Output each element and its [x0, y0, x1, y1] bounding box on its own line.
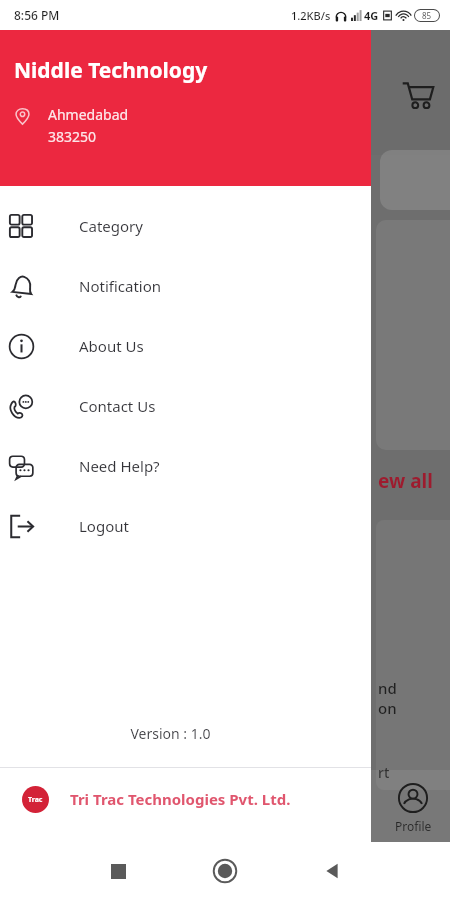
staticText: Profile [395, 818, 432, 834]
staticText: 4G [364, 8, 379, 23]
staticText: Version : 1.0 [0, 724, 341, 743]
staticText: on [378, 698, 397, 718]
staticText: 8:56 PM [14, 7, 60, 23]
staticText: Need Help? [79, 456, 160, 476]
staticText: Niddle Technology [14, 56, 208, 85]
staticText: Tri Trac Technologies Pvt. Ltd. [70, 789, 291, 809]
staticText: rt [378, 763, 390, 782]
button[interactable]: Recents [100, 853, 136, 889]
staticText: 85 [422, 10, 432, 21]
staticText: 383250 [48, 127, 97, 146]
staticText: Notification [79, 276, 162, 296]
button[interactable]: Cart [395, 72, 441, 118]
staticText: Contact Us [79, 396, 156, 416]
button[interactable]: About Us [0, 316, 371, 376]
staticText: About Us [79, 336, 144, 356]
button[interactable]: Category [0, 196, 371, 256]
button[interactable]: Logout [0, 496, 371, 556]
button[interactable]: Home [207, 853, 243, 889]
staticText: Category [79, 216, 143, 236]
staticText: ew all [378, 468, 433, 494]
button[interactable]: Contact Us [0, 376, 371, 436]
staticText: Trac [28, 795, 43, 805]
button[interactable]: Need Help? [0, 436, 371, 496]
button[interactable]: Profile [376, 782, 450, 834]
button[interactable]: Back [314, 853, 350, 889]
staticText: nd [378, 678, 397, 698]
staticText: 1.2KB/s [291, 8, 331, 23]
button[interactable]: Notification [0, 256, 371, 316]
staticText: Logout [79, 516, 129, 536]
button[interactable]: Trac [0, 768, 371, 830]
staticText: Ahmedabad [48, 105, 129, 124]
